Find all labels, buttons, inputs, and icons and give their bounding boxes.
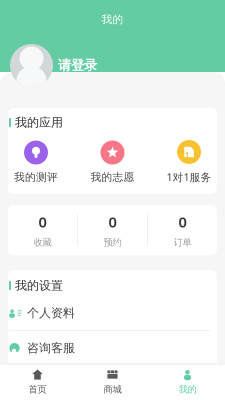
button[interactable]: 我的志愿 <box>86 140 138 184</box>
staticText: 我的 <box>178 383 196 395</box>
button[interactable]: 我的 <box>150 368 225 395</box>
button[interactable]: 请登录 <box>58 57 97 73</box>
staticText: 0 <box>178 212 186 232</box>
button[interactable]: 1 <box>163 140 215 184</box>
staticText: 0 <box>108 212 116 232</box>
staticText: 商城 <box>103 383 121 395</box>
button[interactable]: 登录头像 <box>10 44 53 87</box>
staticText: 1对1服务 <box>166 170 211 184</box>
button[interactable]: 咨询客服 <box>9 331 210 365</box>
button[interactable]: 0 <box>8 212 77 248</box>
staticText: 1 <box>185 150 189 159</box>
button[interactable]: 个人资料 <box>9 296 210 330</box>
staticText: 我的测评 <box>14 170 58 184</box>
staticText: 收藏 <box>33 237 51 248</box>
button[interactable]: 0 <box>148 212 217 248</box>
staticText: 个人资料 <box>27 306 75 320</box>
button[interactable]: 首页 <box>0 368 75 395</box>
staticText: 订单 <box>173 237 191 248</box>
staticText: 咨询客服 <box>27 341 75 355</box>
staticText: 首页 <box>28 383 46 395</box>
staticText: 请登录 <box>58 57 97 73</box>
button[interactable]: 商城 <box>75 368 150 395</box>
staticText: 我的志愿 <box>90 170 134 184</box>
staticText: 我的设置 <box>15 278 63 293</box>
staticText: 我的 <box>101 13 123 26</box>
button[interactable]: 0 <box>78 212 147 248</box>
staticText: 我的应用 <box>15 115 63 130</box>
button[interactable]: 我的测评 <box>10 140 62 184</box>
staticText: 0 <box>38 212 46 232</box>
staticText: 预约 <box>103 237 121 248</box>
